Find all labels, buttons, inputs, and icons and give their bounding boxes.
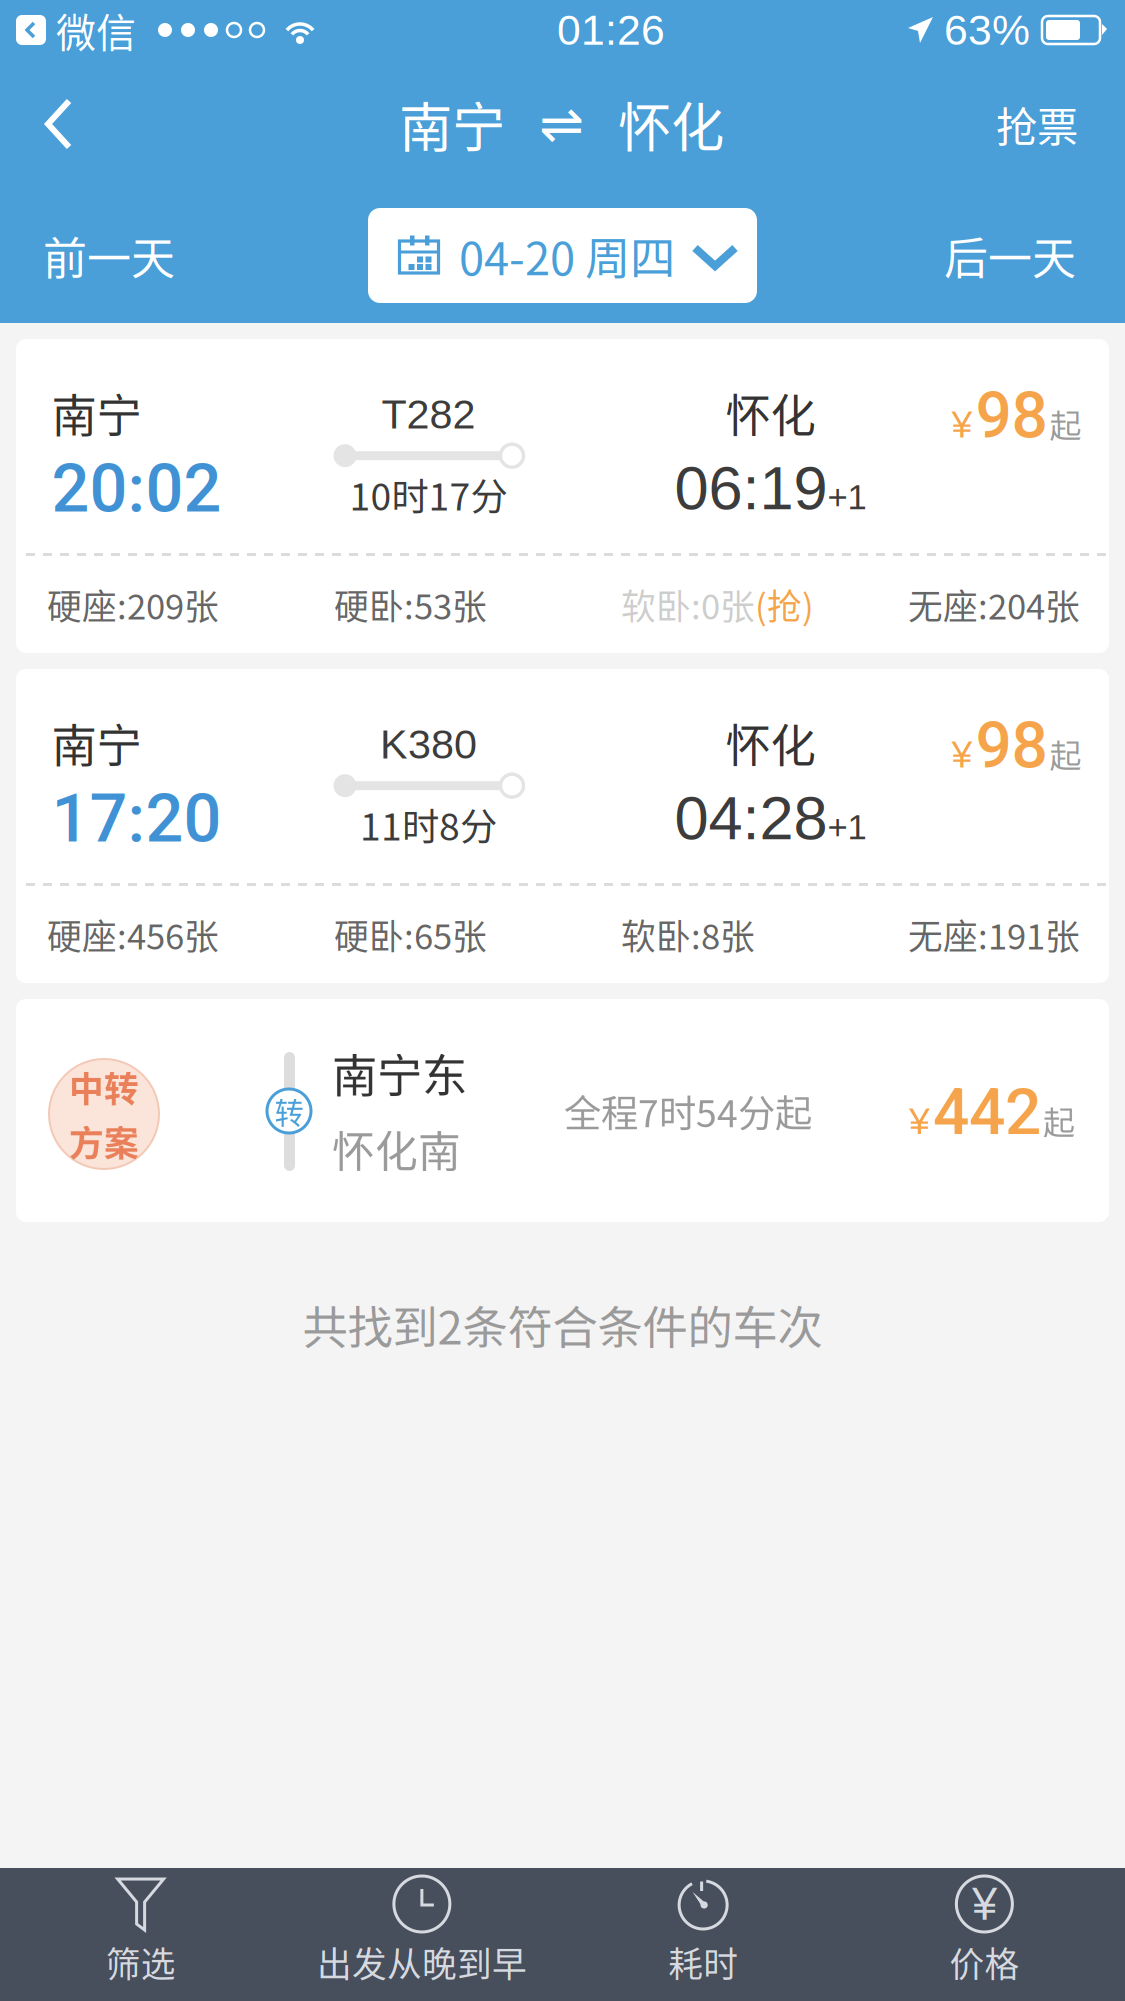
staticText: 软卧:8张 (621, 909, 755, 960)
button[interactable]: 筛选 (0, 1868, 281, 2001)
staticText: (抢) (755, 579, 814, 630)
staticText: 南宁 (51, 710, 141, 776)
staticText: 怀化 (725, 380, 815, 446)
staticText: 中转 (69, 1062, 139, 1112)
staticText: ⇌ (539, 93, 584, 155)
staticText: 价格 (949, 1937, 1019, 1987)
staticText: 10时17分 (349, 467, 507, 521)
staticText: 442 (933, 1075, 1041, 1150)
button[interactable]: 中转 (16, 999, 1109, 1222)
button[interactable]: 后一天 (895, 188, 1125, 323)
staticText: 04:28 (674, 784, 827, 852)
button[interactable]: 南宁 (16, 339, 1109, 653)
button[interactable]: 前一天 (0, 188, 218, 323)
staticText: 起 (1043, 1097, 1075, 1144)
staticText: ¥ (909, 1101, 930, 1142)
button[interactable]: 出发从晚到早 (281, 1868, 562, 2001)
button[interactable]: 04-20 周四 (362, 208, 751, 303)
staticText: 前一天 (43, 224, 175, 287)
staticText: 怀化南 (332, 1118, 461, 1179)
staticText: 硬卧:65张 (334, 909, 487, 960)
staticText: 04-20 周四 (459, 223, 675, 288)
staticText: 软卧:0张 (621, 579, 755, 630)
staticText: 无座:191张 (908, 909, 1080, 960)
staticText: 起 (1049, 730, 1081, 777)
staticText: 转 (274, 1090, 303, 1132)
button[interactable]: 南宁 (16, 669, 1109, 983)
staticText: 筛选 (106, 1937, 176, 1987)
button[interactable]: 耗时 (562, 1868, 844, 2001)
staticText: 耗时 (668, 1937, 738, 1987)
staticText: +1 (827, 808, 866, 846)
staticText: 06:19 (674, 454, 827, 522)
staticText: 怀化 (618, 85, 724, 163)
button[interactable]: 抢票 (949, 60, 1125, 188)
staticText: 怀化 (725, 710, 815, 776)
staticText: 硬座:209张 (47, 579, 219, 630)
staticText: 98 (975, 378, 1047, 453)
staticText: 方案 (69, 1116, 139, 1166)
staticText: 20:02 (51, 450, 221, 528)
staticText: 抢票 (996, 94, 1078, 154)
staticText: +1 (827, 478, 866, 516)
staticText: 南宁 (51, 380, 141, 446)
staticText: 全程7时54分起 (564, 1084, 812, 1138)
staticText: 微信 (56, 1, 136, 59)
staticText: 11时8分 (360, 797, 497, 851)
button[interactable]: Back (0, 60, 120, 188)
button[interactable]: ¥ (844, 1868, 1125, 2001)
staticText: ¥ (972, 1879, 997, 1929)
staticText: 后一天 (944, 224, 1076, 287)
staticText: 共找到2条符合条件的车次 (302, 1292, 822, 1358)
staticText: 出发从晚到早 (317, 1937, 527, 1987)
staticText: 硬卧:53张 (334, 579, 487, 630)
staticText: 硬座:456张 (47, 909, 219, 960)
staticText: K380 (380, 721, 477, 767)
staticText: 98 (975, 708, 1047, 783)
staticText: T282 (381, 391, 475, 437)
staticText: 南宁东 (332, 1040, 467, 1106)
staticText: 01:26 (557, 6, 665, 54)
staticText: 63% (944, 6, 1030, 54)
staticText: ¥ (951, 404, 972, 445)
staticText: 17:20 (51, 780, 221, 858)
staticText: 无座:204张 (908, 579, 1080, 630)
staticText: 南宁 (399, 85, 505, 163)
staticText: 起 (1049, 400, 1081, 447)
staticText: ¥ (951, 734, 972, 775)
